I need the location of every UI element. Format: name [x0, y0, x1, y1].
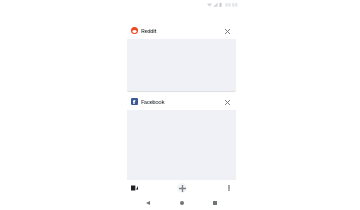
button[interactable]: New tab [174, 180, 190, 196]
button[interactable]: Back [131, 196, 165, 210]
staticText: f [133, 98, 136, 105]
button[interactable]: Reddit [127, 22, 236, 91]
button[interactable]: f [127, 93, 236, 180]
button[interactable]: Recent apps [198, 196, 231, 210]
staticText: Reddit [141, 27, 157, 34]
staticText: Facebook [141, 98, 165, 105]
button[interactable]: More options [223, 182, 235, 194]
button[interactable]: Close tab [221, 96, 233, 108]
button[interactable]: Close tab [221, 25, 233, 37]
button[interactable]: Home [165, 196, 198, 210]
button[interactable]: Tabs [127, 181, 141, 195]
